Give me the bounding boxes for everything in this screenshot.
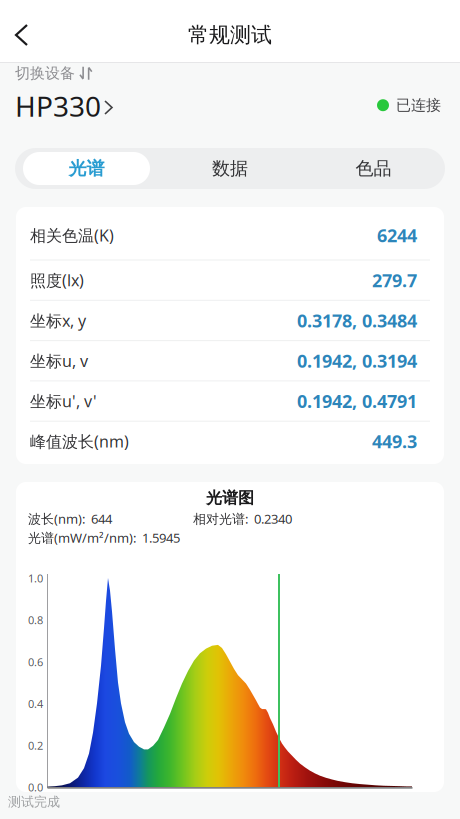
staticText: 常规测试 <box>188 22 272 48</box>
staticText: 色品 <box>355 157 391 179</box>
staticText: 已连接 <box>396 96 441 114</box>
staticText: 0.0 <box>28 780 43 795</box>
staticText: 相对光谱: 0.2340 <box>193 510 292 527</box>
button[interactable]: 切换设备 <box>15 64 92 82</box>
button[interactable]: Back <box>0 0 47 62</box>
staticText: 1.0 <box>28 571 43 586</box>
button[interactable]: 数据 <box>158 148 301 189</box>
button[interactable]: HP330 <box>0 87 142 125</box>
staticText: 279.7 <box>372 268 417 292</box>
staticText: HP330 <box>15 87 101 125</box>
staticText: 449.3 <box>372 429 417 453</box>
staticText: 峰值波长(nm) <box>30 431 129 452</box>
staticText: 0.3178, 0.3484 <box>297 308 417 332</box>
staticText: 测试完成 <box>8 794 60 810</box>
staticText: 波长(nm): 644 <box>28 510 112 527</box>
staticText: 相关色温(K) <box>30 225 114 246</box>
staticText: 照度(lx) <box>30 269 84 291</box>
staticText: 光谱 <box>68 157 104 179</box>
staticText: 光谱(mW/m²/nm): 1.5945 <box>28 529 180 546</box>
button[interactable]: 光谱 <box>15 148 158 189</box>
staticText: 0.8 <box>28 613 43 627</box>
staticText: 切换设备 <box>15 64 75 82</box>
staticText: 6244 <box>377 223 417 247</box>
staticText: 0.1942, 0.4791 <box>297 389 417 413</box>
staticText: 坐标u, v <box>30 350 88 371</box>
staticText: 光谱图 <box>206 488 254 508</box>
button[interactable]: 色品 <box>302 148 445 189</box>
staticText: 0.1942, 0.3194 <box>297 349 417 373</box>
staticText: 数据 <box>212 157 248 179</box>
staticText: 0.6 <box>28 655 43 669</box>
staticText: 0.2 <box>28 738 43 753</box>
staticText: 0.4 <box>28 696 43 711</box>
staticText: 坐标u', v' <box>30 390 97 412</box>
staticText: 坐标x, y <box>30 310 86 331</box>
